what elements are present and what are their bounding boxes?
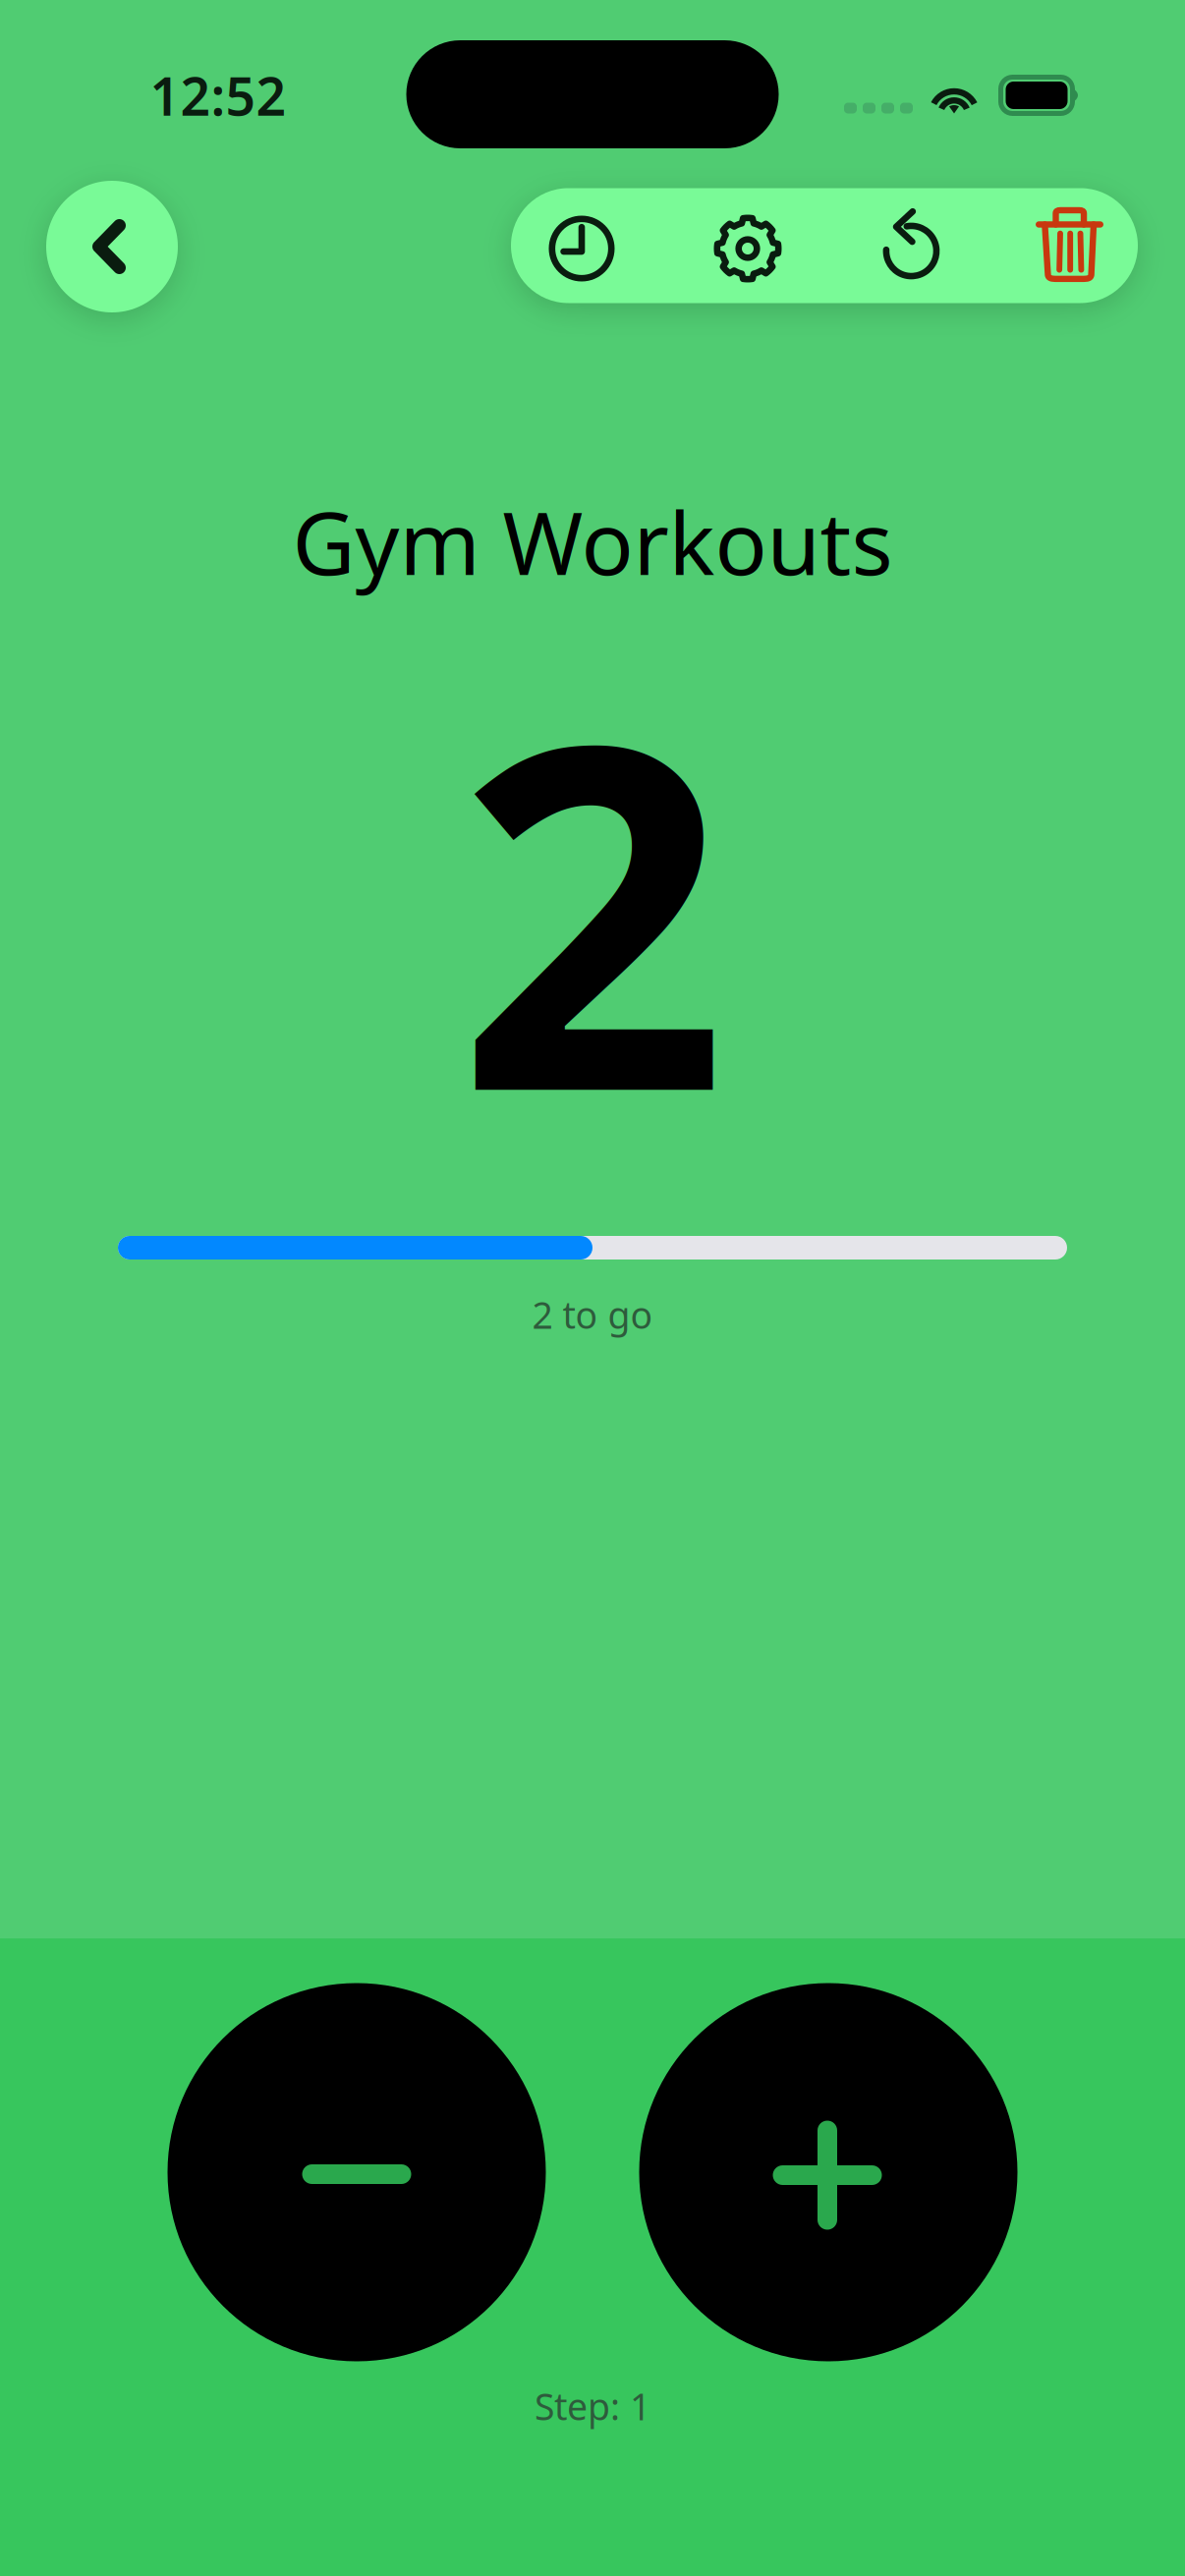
staticText: 12:52 [150,61,286,130]
button[interactable]: Decrease [168,1983,546,2361]
button[interactable]: Settings [673,191,822,306]
button[interactable]: Increase [639,1983,1017,2361]
staticText: Gym Workouts [292,484,893,599]
button[interactable]: Undo [838,188,987,303]
button[interactable]: Back [46,181,178,312]
button[interactable]: History [507,191,656,306]
staticText: Step: 1 [535,2382,650,2430]
staticText: 2 [456,589,729,1221]
staticText: 2 to go [532,1290,653,1339]
button[interactable]: Delete [994,188,1144,303]
